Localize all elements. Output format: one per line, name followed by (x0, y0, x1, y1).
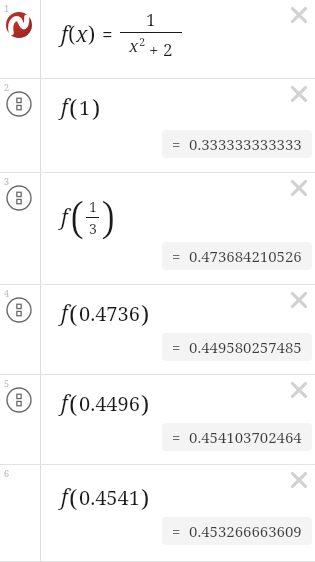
staticText: = (172, 246, 181, 266)
button[interactable]: Point style (6, 387, 32, 413)
staticText: f (61, 20, 68, 49)
staticText: 0.4496 (79, 390, 140, 417)
button[interactable]: = (162, 333, 312, 361)
staticText: f (61, 93, 68, 122)
staticText: ( (69, 387, 78, 420)
staticText: ) (88, 20, 96, 49)
button[interactable]: Point style (6, 297, 32, 323)
staticText: f (61, 389, 68, 418)
staticText: ) (101, 187, 115, 247)
staticText: 3 (4, 175, 10, 187)
button[interactable]: = (162, 423, 312, 451)
staticText: 0.449580257485 (189, 337, 302, 357)
staticText: ( (69, 297, 78, 330)
staticText: 3 (89, 219, 97, 238)
staticText: ) (141, 481, 150, 514)
staticText: 1 (89, 197, 97, 216)
staticText: x (76, 20, 88, 49)
staticText: = (172, 337, 181, 357)
staticText: ) (92, 91, 101, 124)
staticText: 6 (4, 467, 10, 479)
other: Point style (6, 387, 32, 413)
staticText: 0.333333333333 (189, 134, 302, 154)
staticText: 1 (146, 8, 156, 31)
button[interactable]: Graph style (6, 12, 32, 38)
button[interactable]: 5 (0, 375, 315, 465)
staticText: 1 (79, 94, 91, 121)
button[interactable]: Delete expression (284, 173, 314, 203)
staticText: 0.4736 (79, 300, 140, 327)
button[interactable]: 6 (0, 465, 315, 562)
staticText: ( (70, 187, 84, 247)
staticText: 4 (4, 287, 10, 299)
button[interactable]: Delete expression (284, 375, 314, 405)
button[interactable]: Point style (6, 91, 32, 117)
staticText: 2 (139, 34, 146, 49)
staticText: 0.473684210526 (189, 246, 302, 266)
other: Point style (6, 185, 32, 211)
staticText: f (61, 203, 68, 232)
other: Point style (6, 297, 32, 323)
staticText: ) (141, 387, 150, 420)
button[interactable]: = (162, 130, 312, 158)
button[interactable]: 4 (0, 285, 315, 375)
button[interactable]: = (162, 242, 312, 270)
staticText: x (129, 34, 139, 57)
staticText: ( (69, 481, 78, 514)
button[interactable]: Delete expression (284, 0, 314, 30)
staticText: ) (141, 297, 150, 330)
staticText: 0.453266663609 (189, 521, 302, 541)
staticText: 0.454103702464 (189, 427, 302, 447)
button[interactable]: 2 (0, 79, 315, 173)
staticText: + 2 (149, 38, 173, 61)
other: Graph style (6, 12, 32, 38)
staticText: = (172, 134, 181, 154)
button[interactable]: Delete expression (284, 285, 314, 315)
staticText: 5 (4, 377, 10, 389)
staticText: 2 (4, 81, 10, 93)
other: Point style (6, 91, 32, 117)
staticText: = (172, 427, 181, 447)
staticText: ( (68, 20, 76, 49)
staticText: f (61, 483, 68, 512)
button[interactable]: 3 (0, 173, 315, 285)
staticText: 0.4541 (79, 484, 140, 511)
staticText: 1 (4, 2, 10, 14)
staticText: f (61, 299, 68, 328)
button[interactable]: Delete expression (284, 79, 314, 109)
button[interactable]: 1 (0, 0, 315, 79)
staticText: = (172, 521, 181, 541)
button[interactable]: Delete expression (284, 465, 314, 495)
button[interactable]: = (162, 517, 312, 545)
staticText: ( (69, 91, 78, 124)
button[interactable]: Point style (6, 185, 32, 211)
staticText: = (102, 22, 113, 48)
